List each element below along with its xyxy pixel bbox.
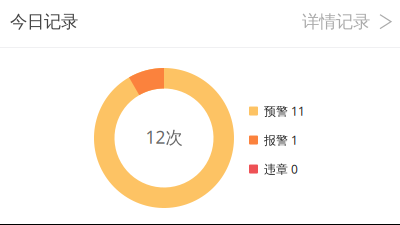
staticText: 详情记录 [302,11,370,32]
button[interactable]: 详情记录 [292,1,400,42]
staticText: 报警 1 [264,132,298,148]
staticText: 预警 11 [264,103,305,119]
staticText: 今日记录 [10,11,78,32]
staticText: 12次 [145,125,182,148]
staticText: 违章 0 [264,161,298,177]
